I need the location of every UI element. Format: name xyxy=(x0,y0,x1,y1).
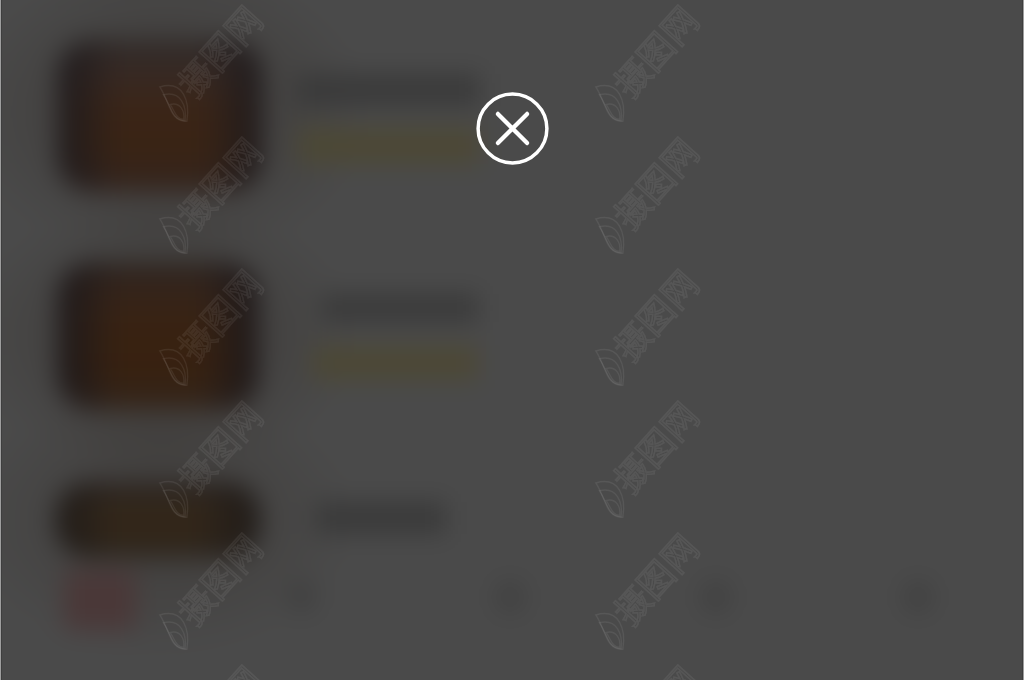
staticText: 摄图网 xyxy=(169,261,272,369)
staticText: 摄图网 xyxy=(169,0,272,105)
staticText: 摄图网 xyxy=(605,393,708,501)
staticText: 摄图网 xyxy=(605,261,708,369)
staticText: 摄图网 xyxy=(605,0,708,105)
staticText: 摄图网 xyxy=(169,525,272,633)
staticText: 摄图网 xyxy=(169,129,272,237)
staticText: 摄图网 xyxy=(605,525,708,633)
staticText: 摄图网 xyxy=(169,393,272,501)
staticText: 摄图网 xyxy=(605,129,708,237)
button[interactable]: Close xyxy=(475,91,550,166)
